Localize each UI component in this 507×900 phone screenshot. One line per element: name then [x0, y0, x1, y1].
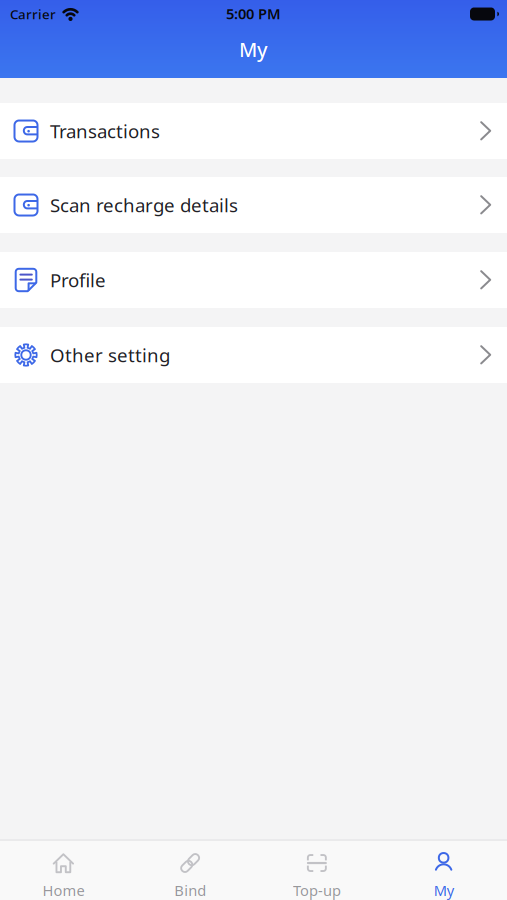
button[interactable]: Profile [0, 252, 507, 308]
button[interactable]: My [380, 852, 507, 900]
staticText: My [434, 880, 454, 900]
staticText: Profile [50, 268, 106, 292]
staticText: Home [42, 880, 84, 900]
button[interactable]: Home [0, 852, 127, 900]
button[interactable]: Scan recharge details [0, 177, 507, 233]
button[interactable]: Top-up [253, 852, 380, 900]
button[interactable]: Transactions [0, 103, 507, 159]
staticText: 5:00 PM [226, 4, 281, 23]
staticText: My [239, 36, 268, 63]
staticText: Bind [174, 880, 206, 900]
button[interactable]: Bind [127, 852, 254, 900]
staticText: Other setting [50, 343, 170, 367]
staticText: Transactions [50, 119, 160, 143]
staticText: Scan recharge details [50, 193, 238, 217]
staticText: Carrier [10, 5, 56, 23]
staticText: Top-up [293, 880, 341, 900]
button[interactable]: Other setting [0, 327, 507, 383]
